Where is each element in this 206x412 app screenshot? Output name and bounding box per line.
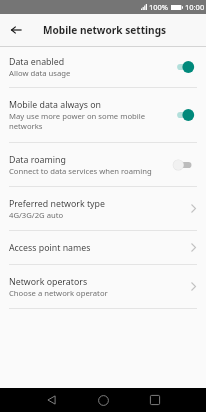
staticText: 4G/3G/2G auto xyxy=(9,210,64,220)
button[interactable]: Home xyxy=(77,388,129,412)
staticText: Connect to data services when roaming xyxy=(9,166,152,176)
button[interactable]: Recents xyxy=(129,388,181,412)
staticText: Access point names xyxy=(9,242,91,254)
staticText: 100% xyxy=(149,2,169,12)
button[interactable]: Back xyxy=(25,388,77,412)
button[interactable]: Data roaming xyxy=(0,143,206,186)
staticText: 10:00 xyxy=(185,2,205,12)
staticText: Data enabled xyxy=(9,56,65,68)
button[interactable]: Network operators xyxy=(0,265,206,308)
button[interactable]: Access point names xyxy=(0,231,206,264)
button[interactable]: Mobile data always on xyxy=(0,88,206,142)
staticText: May use more power on some mobile networ… xyxy=(9,111,146,131)
button[interactable]: Data enabled xyxy=(0,47,206,87)
staticText: Network operators xyxy=(9,276,88,288)
button[interactable]: Preferred network type xyxy=(0,187,206,230)
staticText: Allow data usage xyxy=(9,68,71,78)
staticText: Data roaming xyxy=(9,154,66,166)
staticText: Choose a network operator xyxy=(9,288,108,298)
staticText: Mobile network settings xyxy=(43,23,167,37)
button[interactable]: Back xyxy=(7,13,25,46)
staticText: Mobile data always on xyxy=(9,99,102,111)
staticText: Preferred network type xyxy=(9,198,105,210)
